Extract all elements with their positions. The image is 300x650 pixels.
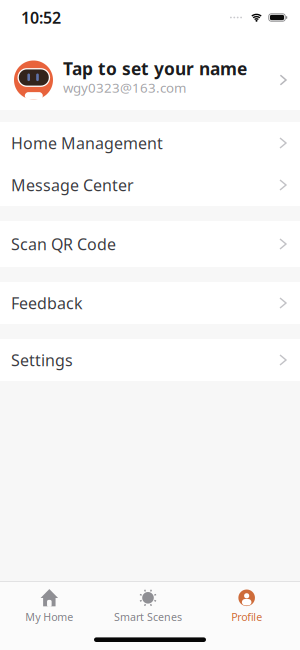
staticText: My Home: [25, 610, 73, 624]
staticText: Message Center: [11, 174, 134, 196]
button[interactable]: Home Management: [0, 122, 300, 164]
button[interactable]: Message Center: [0, 164, 300, 206]
button[interactable]: Settings: [0, 339, 300, 381]
staticText: Feedback: [11, 292, 83, 314]
staticText: Smart Scenes: [114, 610, 182, 624]
staticText: Tap to set your name: [63, 57, 247, 80]
button[interactable]: Profile: [197, 589, 296, 624]
button[interactable]: Smart Scenes: [99, 589, 197, 624]
button[interactable]: Tap to set your name: [0, 32, 300, 110]
staticText: wgy0323@163.com: [63, 79, 186, 96]
staticText: Profile: [231, 610, 262, 624]
button[interactable]: Scan QR Code: [0, 221, 300, 267]
staticText: Scan QR Code: [11, 233, 116, 255]
button[interactable]: My Home: [0, 589, 99, 624]
button[interactable]: Feedback: [0, 282, 300, 324]
staticText: Settings: [11, 349, 73, 371]
staticText: Home Management: [11, 132, 163, 154]
staticText: 10:52: [21, 7, 61, 28]
